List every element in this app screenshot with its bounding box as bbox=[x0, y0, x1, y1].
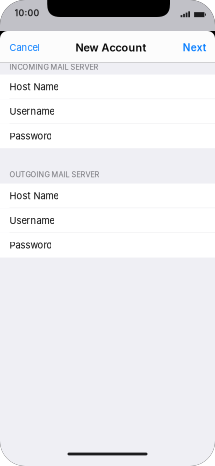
staticText: Host Name bbox=[9, 190, 58, 201]
staticText: Host Name bbox=[9, 81, 58, 92]
staticText: Next bbox=[183, 41, 207, 54]
staticText: Cancel bbox=[9, 42, 39, 53]
staticText: Password bbox=[9, 239, 52, 251]
button[interactable]: Username bbox=[0, 208, 215, 233]
button[interactable]: Next bbox=[177, 31, 215, 63]
staticText: 10:00 bbox=[14, 8, 39, 18]
staticText: Username bbox=[9, 215, 54, 226]
staticText: INCOMING MAIL SERVER bbox=[9, 63, 98, 72]
button[interactable]: Host Name bbox=[0, 74, 215, 99]
staticText: Username bbox=[9, 106, 54, 117]
button[interactable]: Host Name bbox=[0, 184, 215, 208]
button[interactable]: Password bbox=[0, 124, 215, 148]
staticText: OUTGOING MAIL SERVER bbox=[9, 170, 99, 179]
button[interactable]: Password bbox=[0, 233, 215, 257]
button[interactable]: Username bbox=[0, 99, 215, 124]
staticText: Password bbox=[9, 130, 52, 142]
button[interactable]: Cancel bbox=[0, 31, 45, 63]
staticText: New Account bbox=[75, 41, 146, 54]
